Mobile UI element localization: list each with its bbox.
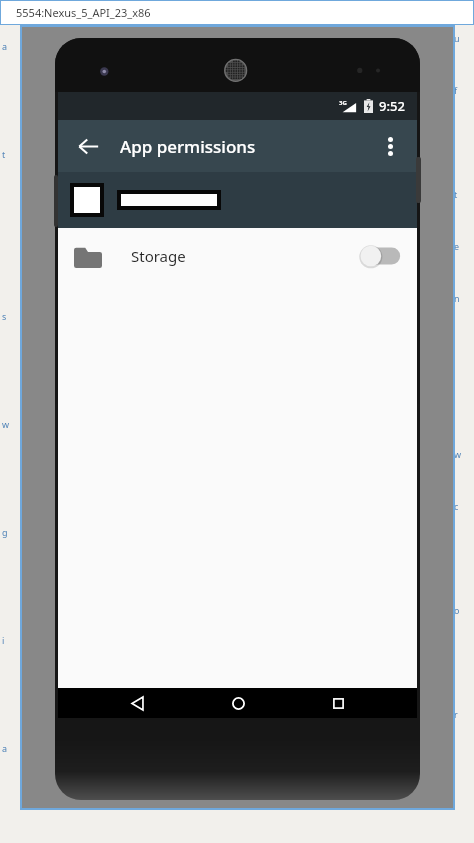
staticText: 9:52 — [379, 97, 405, 115]
staticText: a — [2, 742, 8, 754]
staticText: t — [2, 148, 6, 160]
staticText: 5554:Nexus_5_API_23_x86 — [16, 5, 151, 20]
button[interactable]: Home — [216, 688, 260, 718]
staticText: o — [454, 604, 460, 616]
button[interactable]: Navigate up — [66, 124, 110, 168]
staticText: Storage — [131, 246, 359, 266]
staticText: f — [454, 84, 458, 96]
staticText: w — [2, 418, 10, 430]
staticText: n — [454, 292, 460, 304]
staticText: s — [2, 310, 7, 322]
staticText: 3G — [339, 99, 347, 107]
button[interactable]: Storage — [58, 228, 417, 284]
button[interactable]: More options — [369, 125, 411, 167]
staticText: t — [454, 188, 458, 200]
staticText: i — [2, 634, 5, 646]
staticText: c — [454, 500, 459, 512]
staticText: u — [454, 32, 460, 44]
button[interactable]: Recent apps — [316, 688, 360, 718]
staticText: w — [454, 448, 462, 460]
staticText: r — [454, 708, 458, 720]
staticText: App permissions — [120, 135, 256, 158]
staticText: g — [2, 526, 8, 538]
button[interactable]: Back — [115, 688, 159, 718]
button[interactable]: Storage permission toggle — [359, 242, 401, 270]
staticText: a — [2, 40, 8, 52]
staticText: e — [454, 240, 460, 252]
